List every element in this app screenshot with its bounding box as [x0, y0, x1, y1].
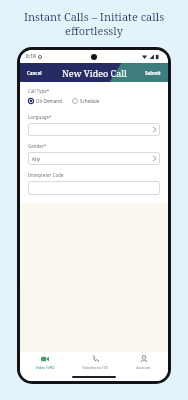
staticText: Gender* [28, 143, 47, 149]
button[interactable]: Schedule [72, 97, 100, 105]
staticText: On-Demand [36, 98, 62, 104]
staticText: New Video Call [62, 67, 127, 79]
button[interactable]: Any [28, 152, 160, 165]
button[interactable]: Telephonic (TI) [70, 352, 119, 373]
staticText: Schedule [80, 98, 100, 104]
staticText: Interpreter Code [28, 172, 64, 178]
staticText: Telephonic (TI) [82, 365, 108, 370]
staticText: Language* [28, 114, 52, 120]
staticText: Account [136, 365, 151, 370]
staticText: Any [32, 156, 40, 162]
button[interactable]: Submit [143, 67, 163, 79]
button[interactable] [28, 123, 160, 136]
button[interactable]: On-Demand [28, 97, 62, 105]
staticText: 6:18 [26, 53, 36, 60]
button[interactable]: Cancel [25, 67, 44, 79]
staticText: Call Type* [28, 88, 50, 94]
button[interactable]: Account [119, 352, 168, 373]
button[interactable] [28, 181, 160, 195]
staticText: Cancel [27, 70, 42, 76]
staticText: Video (VRI) [35, 365, 55, 370]
staticText: Instant Calls – Initiate calls effortles… [14, 9, 174, 38]
staticText: Submit [145, 70, 161, 76]
button[interactable]: Video (VRI) [20, 352, 70, 373]
